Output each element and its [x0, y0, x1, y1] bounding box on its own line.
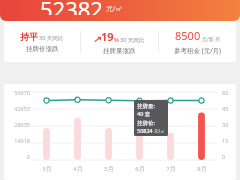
staticText: 30 天同比 — [39, 34, 64, 42]
staticText: 19 — [101, 29, 114, 44]
staticText: 5月 — [104, 165, 114, 173]
staticText: 挂牌价涨跌 — [26, 45, 59, 53]
staticText: 8月 — [197, 165, 207, 173]
staticText: 7月 — [166, 165, 176, 173]
staticText: 参考租金 (元/月) — [174, 46, 222, 55]
staticText: 6月 — [135, 165, 145, 173]
staticText: 56070 — [14, 89, 30, 96]
staticText: 28035 — [14, 121, 30, 128]
staticText: 挂牌量涨跌 — [103, 47, 136, 55]
button[interactable]: 持平 — [4, 21, 80, 62]
button[interactable]: 8500 — [159, 21, 236, 62]
staticText: 4月 — [73, 165, 83, 173]
staticText: 45 — [222, 105, 229, 112]
staticText: 15 — [222, 137, 229, 144]
staticText: 60 — [222, 89, 229, 96]
staticText: 42053 — [14, 105, 30, 112]
staticText: 30 天同比 — [120, 36, 145, 44]
button[interactable]: 19 — [81, 21, 158, 62]
button[interactable]: 数据详情 — [137, 102, 165, 134]
staticText: 14018 — [14, 137, 30, 144]
staticText: 元/套·月 — [202, 36, 221, 43]
staticText: 元/㎡ — [154, 128, 165, 134]
button[interactable]: 52382 — [0, 0, 240, 21]
staticText: 8500 — [175, 28, 201, 43]
staticText: 挂牌价: — [137, 119, 155, 127]
staticText: 0 — [222, 153, 226, 160]
staticText: 40 套 — [137, 110, 151, 118]
staticText: 52382 — [40, 0, 103, 15]
staticText: 3月 — [42, 165, 52, 173]
staticText: 0 — [26, 153, 30, 160]
staticText: % — [114, 36, 119, 44]
staticText: 元/㎡ — [106, 4, 123, 14]
staticText: 50824 — [137, 127, 153, 134]
staticText: 持平 — [20, 31, 38, 42]
staticText: 30 — [222, 121, 229, 128]
staticText: 挂牌量: — [137, 102, 155, 110]
